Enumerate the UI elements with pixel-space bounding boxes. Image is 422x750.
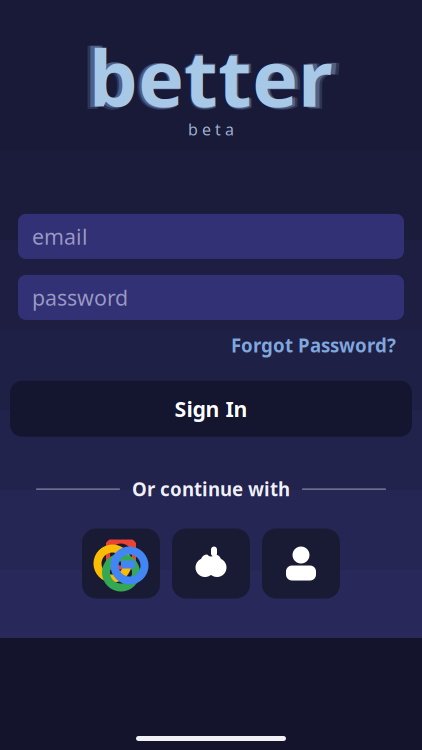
button[interactable]: Continue as Guest (262, 528, 340, 598)
staticText: Forgot Password? (231, 333, 396, 358)
button[interactable]: email (18, 214, 404, 259)
staticText: Sign In (174, 395, 247, 423)
staticText: better (81, 22, 340, 132)
button[interactable]: Sign In (10, 381, 412, 437)
staticText: email (32, 222, 88, 251)
staticText: better (84, 24, 337, 130)
staticText: Or continue with (132, 477, 290, 501)
button[interactable]: Register now (223, 636, 348, 667)
button[interactable]: Forgot Password? (229, 330, 398, 361)
button[interactable]: Continue with Apple (172, 528, 250, 598)
button[interactable]: Continue with Google (82, 528, 160, 598)
staticText: better (89, 25, 333, 128)
button[interactable]: password (18, 275, 404, 320)
staticText: password (32, 283, 128, 312)
staticText: b e t a (188, 119, 234, 140)
